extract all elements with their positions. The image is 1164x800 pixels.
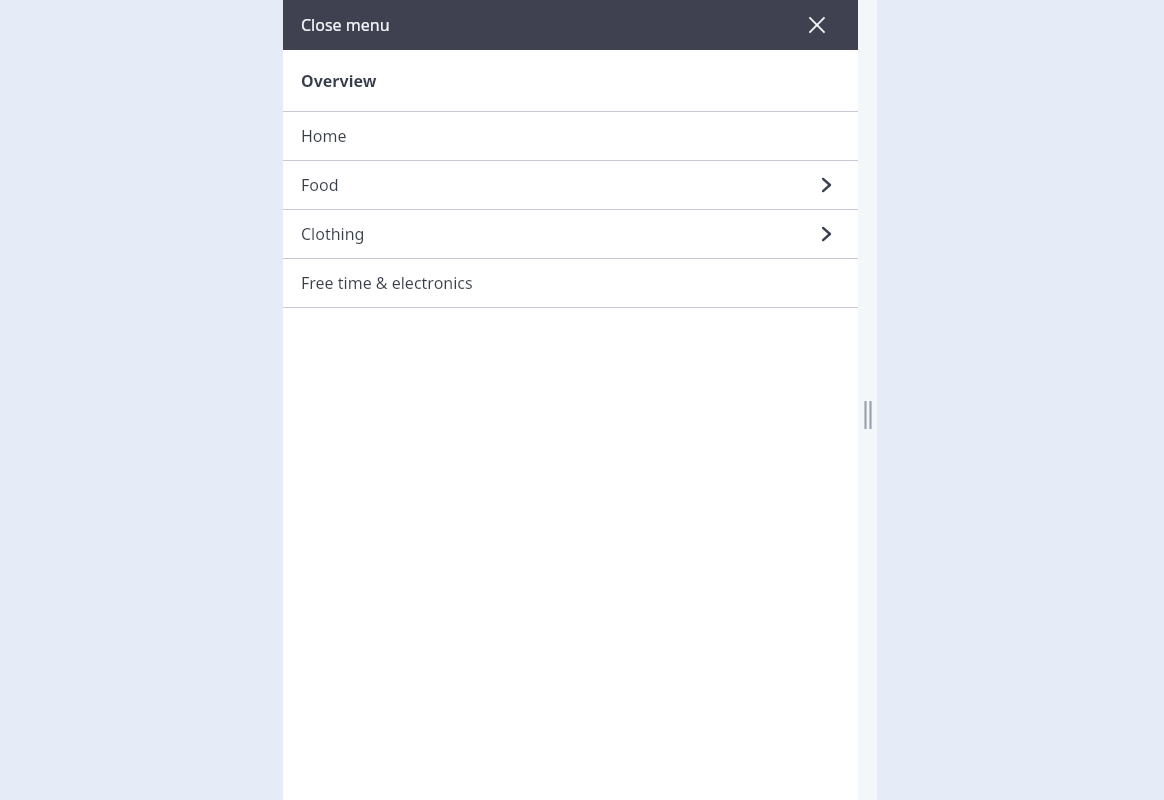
button[interactable]: Overview xyxy=(283,50,858,111)
button[interactable]: Close menu xyxy=(301,8,390,42)
button[interactable]: Close menu xyxy=(800,8,834,42)
button[interactable]: Free time & electronics xyxy=(283,259,858,307)
staticText: Clothing xyxy=(301,223,365,245)
button[interactable]: Clothing xyxy=(283,210,858,258)
staticText: Close menu xyxy=(301,14,390,36)
button[interactable]: Resize menu xyxy=(856,390,880,440)
staticText: Home xyxy=(301,125,347,147)
staticText: Overview xyxy=(301,70,377,92)
button[interactable]: Home xyxy=(283,112,858,160)
button[interactable]: Food xyxy=(283,161,858,209)
staticText: Food xyxy=(301,174,339,196)
staticText: Free time & electronics xyxy=(301,272,473,294)
